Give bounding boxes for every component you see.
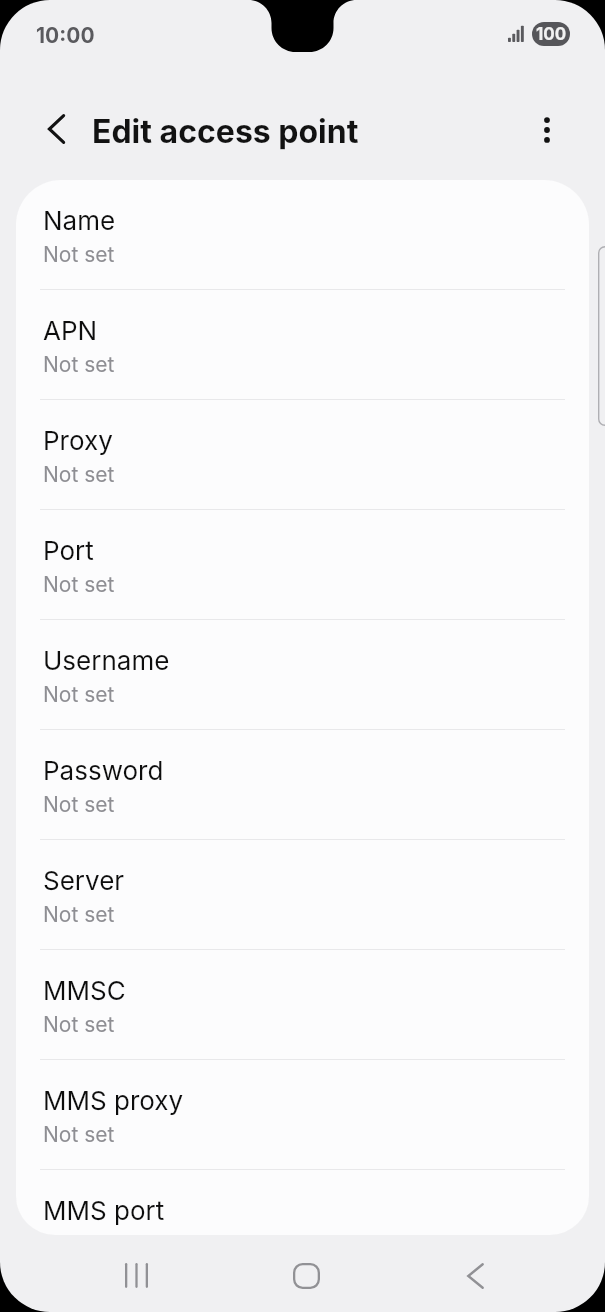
staticText: Not set (43, 242, 115, 267)
staticText: MMS port (43, 1195, 165, 1226)
button[interactable]: APN (16, 290, 589, 400)
button[interactable]: Navigate up (32, 105, 80, 153)
button[interactable]: MMS port (16, 1170, 589, 1235)
staticText: MMSC (43, 975, 126, 1006)
staticText: Not set (43, 792, 115, 817)
button[interactable]: Recent apps (104, 1243, 169, 1308)
staticText: APN (43, 315, 98, 346)
button[interactable]: Back (443, 1243, 508, 1308)
staticText: Proxy (43, 425, 113, 456)
staticText: Not set (43, 352, 115, 377)
staticText: Edit access point (92, 112, 359, 151)
staticText: Server (43, 865, 125, 896)
staticText: Not set (43, 682, 115, 707)
staticText: 10:00 (36, 23, 95, 48)
staticText: Port (43, 535, 94, 566)
button[interactable]: Server (16, 840, 589, 950)
staticText: Not set (43, 572, 115, 597)
staticText: Not set (43, 902, 115, 927)
button[interactable]: MMS proxy (16, 1060, 589, 1170)
staticText: 100 (536, 24, 567, 45)
button[interactable]: More options (523, 106, 571, 154)
staticText: Not set (43, 462, 115, 487)
staticText: Not set (43, 1122, 115, 1147)
button[interactable]: MMSC (16, 950, 589, 1060)
button[interactable]: Username (16, 620, 589, 730)
staticText: Username (43, 645, 170, 676)
button[interactable]: Port (16, 510, 589, 620)
button[interactable]: Password (16, 730, 589, 840)
staticText: Password (43, 755, 164, 786)
staticText: Not set (43, 1012, 115, 1037)
staticText: MMS proxy (43, 1085, 184, 1116)
button[interactable]: Home (274, 1243, 339, 1308)
button[interactable]: Proxy (16, 400, 589, 510)
button[interactable]: Name (16, 180, 589, 290)
staticText: Name (43, 205, 116, 236)
